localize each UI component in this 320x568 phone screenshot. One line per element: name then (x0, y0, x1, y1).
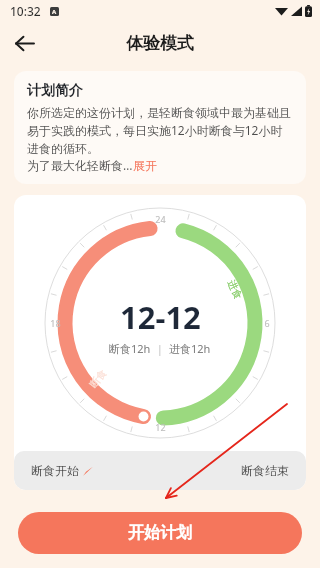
button[interactable]: 展开 (133, 158, 157, 173)
staticText: 断食开始 (31, 463, 79, 478)
staticText: 你所选定的这份计划，是轻断食领域中最为基础且易于实践的模式，每日实施12小时断食… (27, 105, 293, 157)
button[interactable]: 开始计划 (18, 512, 302, 554)
staticText: 断食结束 (241, 463, 289, 478)
staticText: 进食 (225, 278, 245, 301)
staticText: 开始计划 (128, 523, 192, 543)
staticText: 18 (50, 317, 61, 329)
button[interactable]: Back (5, 24, 43, 62)
staticText: 12 (155, 421, 166, 433)
staticText: 10:32 (10, 3, 41, 19)
staticText: A (52, 8, 57, 16)
staticText: 计划简介 (27, 82, 83, 100)
staticText: | (151, 341, 169, 356)
staticText: 24 (155, 213, 166, 225)
staticText: 6 (264, 317, 270, 329)
staticText: 12-12 (120, 296, 201, 338)
staticText: 为了最大化轻断食… (27, 157, 133, 173)
staticText: 断食12h (109, 341, 151, 356)
staticText: 体验模式 (126, 33, 194, 54)
button[interactable]: 断食开始 (14, 451, 306, 490)
staticText: 断食 (87, 367, 109, 390)
staticText: 进食12h (169, 341, 211, 356)
